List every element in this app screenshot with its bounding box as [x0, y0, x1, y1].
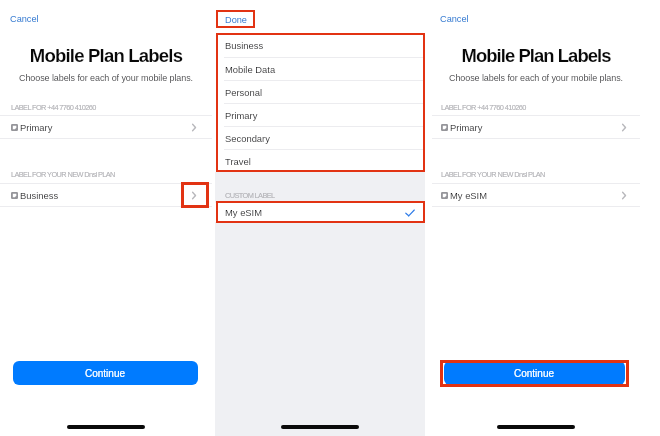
staticText: Personal: [225, 87, 263, 98]
staticText: CUSTOM LABEL: [225, 191, 275, 199]
staticText: Choose labels for each of your mobile pl…: [432, 73, 640, 83]
staticText: LABEL FOR YOUR NEW Dnsl PLAN: [11, 170, 115, 178]
staticText: Secondary: [225, 133, 270, 144]
button[interactable]: Primary: [215, 104, 425, 126]
staticText: LABEL FOR +44 7760 410260: [11, 103, 96, 111]
button[interactable]: Secondary: [215, 127, 425, 149]
staticText: LABEL FOR +44 7760 410260: [441, 103, 526, 111]
button[interactable]: Primary: [0, 116, 212, 138]
other: Highlight preset label list: [216, 33, 425, 172]
staticText: Primary: [225, 110, 258, 121]
staticText: Primary: [450, 122, 483, 133]
button[interactable]: Business: [0, 184, 212, 206]
button[interactable]: Mobile Data: [215, 58, 425, 80]
staticText: My eSIM: [225, 207, 263, 218]
staticText: My eSIM: [450, 190, 488, 201]
other: Highlight custom label row: [216, 201, 425, 223]
staticText: Cancel: [10, 14, 39, 24]
button[interactable]: My eSIM: [215, 203, 425, 222]
button[interactable]: Business: [215, 34, 425, 57]
button[interactable]: Continue: [444, 361, 625, 385]
button[interactable]: My eSIM: [432, 184, 640, 206]
staticText: Travel: [225, 156, 251, 167]
button[interactable]: Primary: [432, 116, 640, 138]
staticText: Cancel: [440, 14, 469, 24]
button[interactable]: Cancel: [6, 11, 43, 27]
other: Highlight Continue button: [440, 360, 629, 387]
staticText: Primary: [20, 122, 53, 133]
staticText: Business: [225, 40, 264, 51]
staticText: Choose labels for each of your mobile pl…: [0, 73, 212, 83]
staticText: Business: [20, 190, 59, 201]
button[interactable]: Personal: [215, 81, 425, 103]
button[interactable]: Cancel: [436, 11, 473, 27]
button[interactable]: Done: [221, 12, 251, 28]
staticText: LABEL FOR YOUR NEW Dnsl PLAN: [441, 170, 545, 178]
button[interactable]: Travel: [215, 150, 425, 172]
staticText: Continue: [85, 368, 126, 379]
staticText: Mobile Data: [225, 64, 276, 75]
button[interactable]: Continue: [13, 361, 198, 385]
other: Highlight Done button: [216, 10, 255, 28]
staticText: Continue: [514, 368, 555, 379]
staticText: Done: [225, 15, 247, 25]
other: Highlight disclosure arrow: [181, 182, 209, 208]
staticText: Mobile Plan Labels: [0, 45, 212, 66]
staticText: Mobile Plan Labels: [432, 45, 640, 66]
